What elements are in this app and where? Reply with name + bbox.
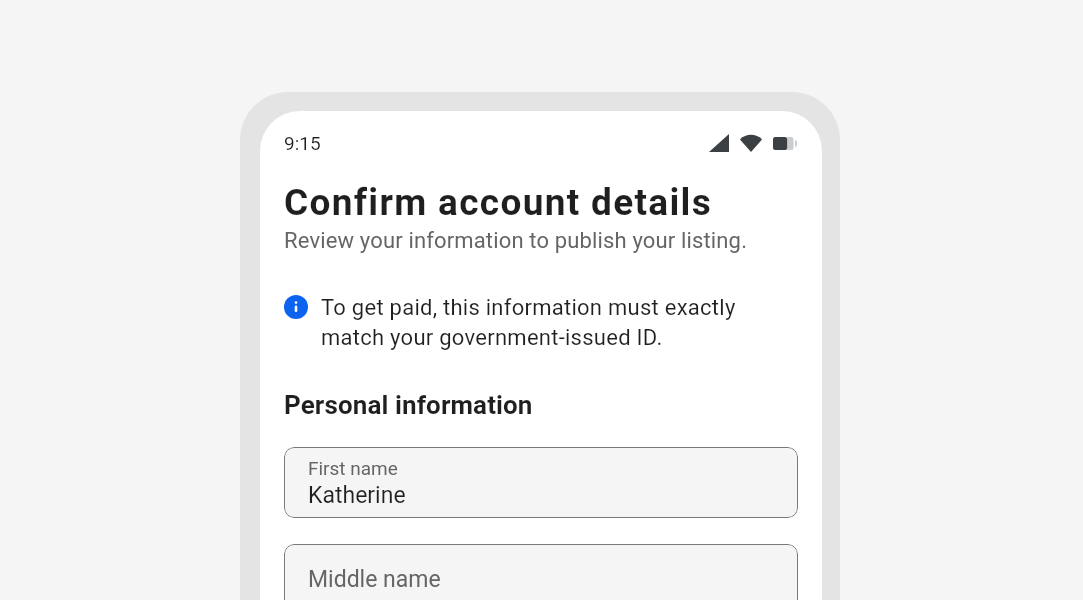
- staticText: Personal information: [284, 390, 533, 420]
- other: Battery: [773, 137, 798, 150]
- staticText: Middle name: [308, 566, 441, 593]
- button[interactable]: Middle name: [284, 544, 798, 600]
- staticText: 9:15: [284, 132, 321, 154]
- other: Mobile signal: [709, 134, 729, 152]
- staticText: Review your information to publish your …: [284, 228, 748, 254]
- staticText: Katherine: [308, 482, 406, 509]
- staticText: Confirm account details: [284, 181, 713, 224]
- staticText: To get paid, this information must exact…: [321, 291, 758, 351]
- other: Wi-Fi: [740, 135, 762, 152]
- other: Information: [284, 295, 308, 319]
- staticText: First name: [308, 457, 398, 479]
- button[interactable]: First name: [284, 447, 798, 518]
